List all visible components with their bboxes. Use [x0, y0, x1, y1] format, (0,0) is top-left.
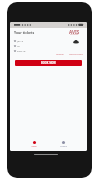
staticText: Jul 12 [17, 39, 24, 42]
staticText: Terms+cond [69, 52, 83, 55]
staticText: BOOK NOW [41, 61, 56, 65]
staticText: AVIS [69, 29, 80, 35]
staticText: Modify [56, 52, 64, 55]
button[interactable]: 70 [14, 43, 82, 48]
button[interactable]: Brand logo [68, 29, 81, 35]
staticText: Account [60, 145, 67, 147]
button[interactable]: Home [28, 140, 40, 148]
staticText: Home [31, 145, 37, 147]
button[interactable]: Account [57, 140, 70, 148]
staticText: Car Rental [70, 33, 79, 35]
button[interactable]: 9:00-18 [14, 48, 82, 53]
staticText: 70 [17, 44, 20, 47]
button[interactable]: BOOK NOW [15, 60, 82, 66]
button[interactable]: Jul 12 [14, 38, 82, 43]
staticText: 9:00-18 [17, 49, 26, 52]
button[interactable]: Terms+cond [69, 52, 83, 55]
button[interactable]: Modify [56, 52, 64, 55]
staticText: Your tickets [14, 30, 35, 35]
